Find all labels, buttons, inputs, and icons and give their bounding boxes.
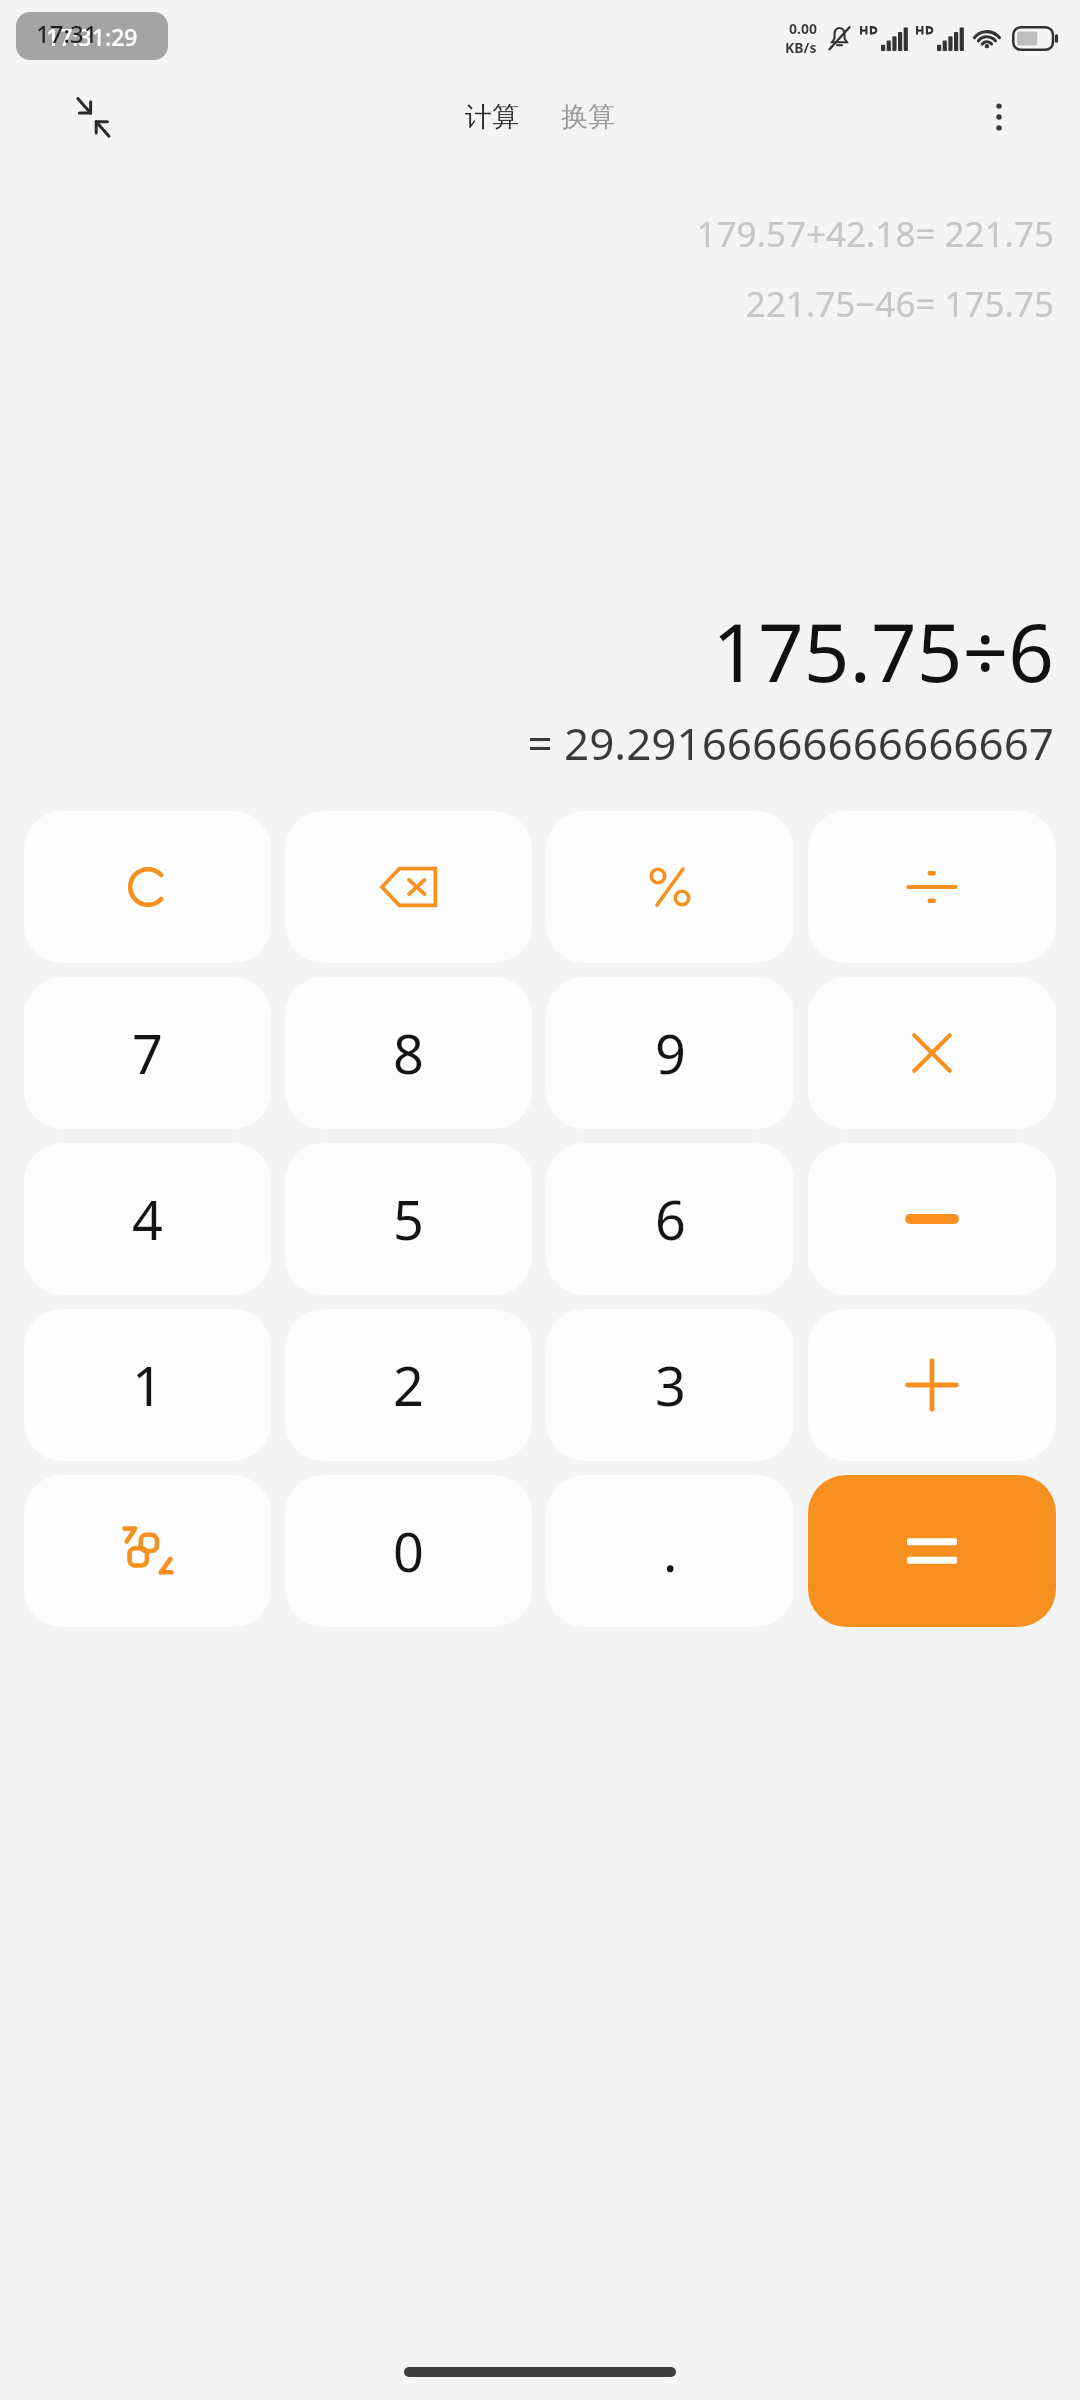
staticText: .: [663, 1514, 678, 1588]
staticText: 9: [655, 1016, 686, 1090]
button[interactable]: 9: [546, 977, 794, 1129]
button[interactable]: .: [546, 1475, 794, 1627]
button[interactable]: Plus: [808, 1309, 1056, 1461]
button[interactable]: 3: [546, 1309, 794, 1461]
staticText: 计算: [465, 100, 519, 134]
button[interactable]: Multiply: [808, 977, 1056, 1129]
button[interactable]: 换算: [553, 92, 623, 142]
staticText: 1: [132, 1348, 163, 1422]
staticText: 17:31: [36, 17, 98, 50]
button[interactable]: 4: [24, 1143, 271, 1295]
staticText: 175.75÷6: [712, 596, 1054, 705]
button[interactable]: 7: [24, 977, 271, 1129]
staticText: KB/s: [785, 38, 817, 57]
staticText: 8: [393, 1016, 424, 1090]
staticText: = 29.29166666666666667: [527, 713, 1054, 773]
staticText: 2: [393, 1348, 424, 1422]
button[interactable]: 5: [285, 1143, 532, 1295]
button[interactable]: Collapse: [62, 86, 124, 148]
button[interactable]: 0: [285, 1475, 532, 1627]
staticText: 17:31:29: [46, 21, 138, 52]
button[interactable]: Minus: [808, 1143, 1056, 1295]
button[interactable]: 1: [24, 1309, 271, 1461]
button[interactable]: 计算: [457, 92, 527, 142]
button[interactable]: 6: [546, 1143, 794, 1295]
staticText: 7: [132, 1016, 163, 1090]
button[interactable]: Clear: [24, 811, 271, 963]
staticText: 4: [132, 1182, 163, 1256]
button[interactable]: Divide: [808, 811, 1056, 963]
button[interactable]: 2: [285, 1309, 532, 1461]
staticText: 0: [393, 1514, 424, 1588]
button[interactable]: 8: [285, 977, 532, 1129]
staticText: 换算: [561, 100, 615, 134]
staticText: 6: [655, 1182, 686, 1256]
button[interactable]: Unit conversion: [24, 1475, 271, 1627]
button[interactable]: More options: [968, 86, 1030, 148]
button[interactable]: Backspace: [285, 811, 532, 963]
button[interactable]: Equals: [808, 1475, 1056, 1627]
staticText: 221.75−46= 175.75: [745, 280, 1054, 328]
staticText: 5: [393, 1182, 424, 1256]
staticText: 3: [655, 1348, 686, 1422]
staticText: 0.00: [789, 19, 817, 38]
staticText: 179.57+42.18= 221.75: [696, 210, 1054, 258]
button[interactable]: Percent: [546, 811, 794, 963]
